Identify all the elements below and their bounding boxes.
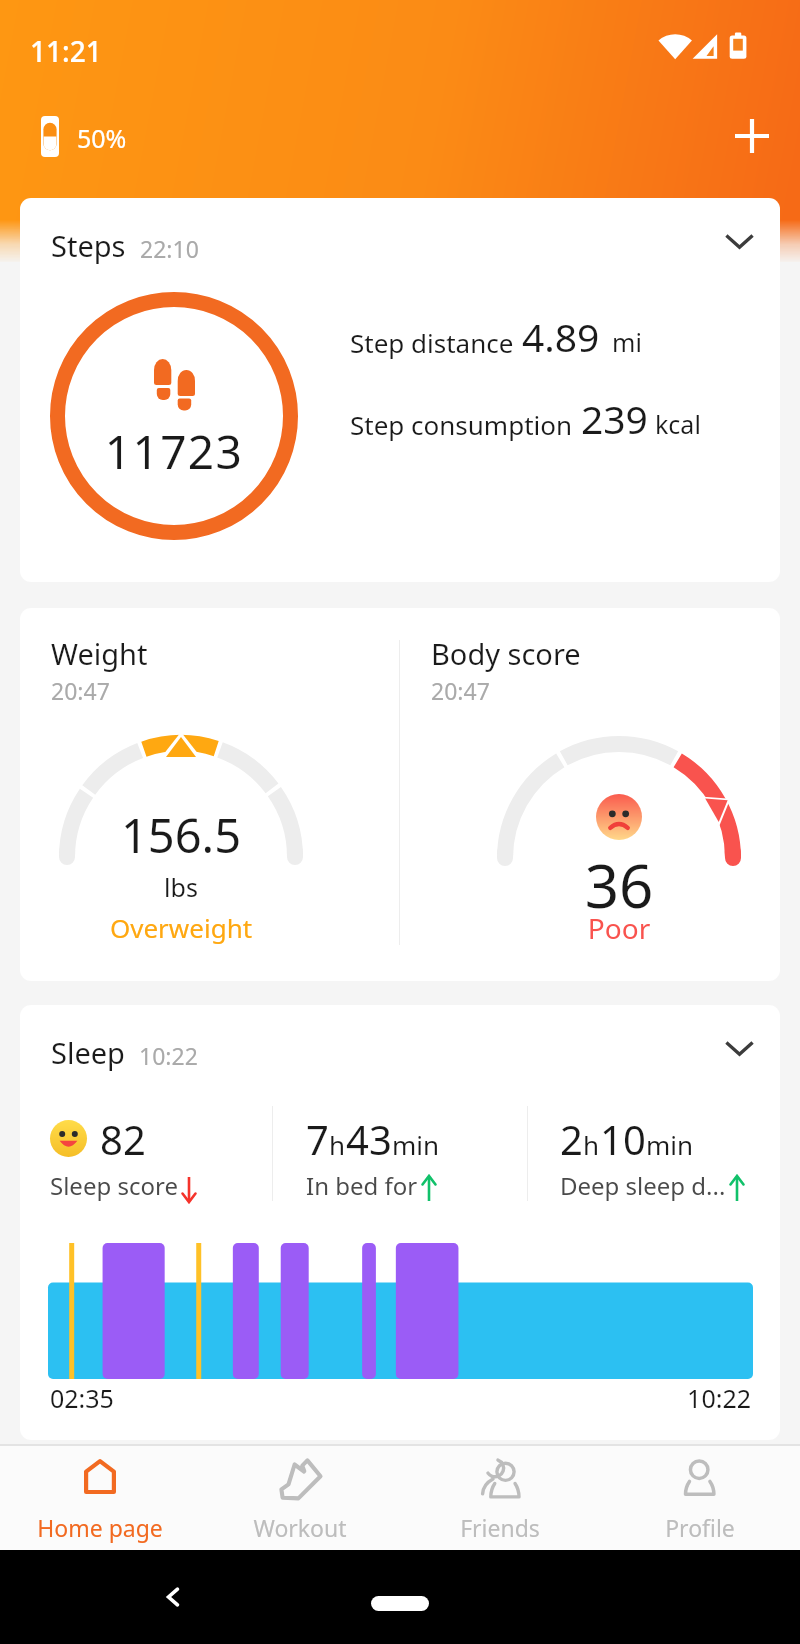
staticText: lbs — [59, 870, 303, 904]
staticText: Poor — [497, 909, 741, 947]
button[interactable]: Back — [145, 1569, 201, 1625]
staticText: 2 — [560, 1112, 583, 1166]
button[interactable]: Sleep — [20, 1005, 780, 1440]
staticText: 4.89 — [522, 310, 600, 363]
staticText: 20:47 — [51, 675, 110, 706]
staticText: 22:10 — [140, 233, 199, 264]
staticText: Weight — [51, 634, 148, 673]
button[interactable]: Home page — [0, 1446, 200, 1550]
staticText: Step distance — [350, 325, 514, 360]
staticText: min — [646, 1127, 694, 1162]
staticText: Home page — [37, 1512, 163, 1543]
staticText: 239 — [581, 392, 648, 445]
staticText: min — [392, 1127, 440, 1162]
staticText: 11:21 — [30, 32, 102, 70]
staticText: 36 — [497, 844, 741, 926]
button[interactable]: Add device — [724, 108, 779, 163]
button[interactable]: Workout — [200, 1446, 400, 1550]
staticText: 156.5 — [59, 803, 303, 867]
staticText: Sleep score — [50, 1169, 178, 1202]
button[interactable]: Friends — [400, 1446, 600, 1550]
button[interactable]: Profile — [600, 1446, 800, 1550]
staticText: h — [329, 1127, 346, 1162]
staticText: 7 — [306, 1112, 329, 1166]
staticText: Sleep — [51, 1033, 125, 1072]
staticText: kcal — [655, 407, 701, 441]
staticText: 82 — [100, 1112, 146, 1166]
staticText: 10 — [600, 1112, 646, 1166]
staticText: 11723 — [30, 420, 318, 483]
staticText: In bed for — [306, 1169, 418, 1202]
staticText: Overweight — [59, 910, 303, 945]
button[interactable]: Collapse — [712, 1022, 766, 1076]
staticText: h — [583, 1127, 600, 1162]
staticText: Friends — [460, 1512, 540, 1543]
staticText: mi — [612, 325, 642, 359]
button[interactable]: Weight — [20, 608, 780, 981]
button[interactable]: Home — [371, 1596, 429, 1611]
button[interactable]: Steps — [20, 198, 780, 582]
staticText: Workout — [253, 1512, 347, 1543]
staticText: Profile — [665, 1512, 735, 1543]
staticText: 10:22 — [50, 1381, 751, 1415]
staticText: 02:35 — [50, 1381, 114, 1415]
button[interactable]: 50% — [33, 108, 137, 165]
staticText: 50% — [77, 121, 127, 155]
button[interactable]: Collapse — [712, 215, 766, 269]
staticText: Steps — [51, 226, 126, 265]
staticText: 20:47 — [431, 675, 490, 706]
staticText: Deep sleep d... — [560, 1169, 726, 1202]
staticText: Step consumption — [350, 407, 573, 442]
staticText: 43 — [346, 1112, 392, 1166]
staticText: 10:22 — [139, 1040, 198, 1071]
staticText: Body score — [431, 634, 581, 673]
